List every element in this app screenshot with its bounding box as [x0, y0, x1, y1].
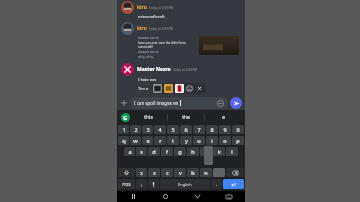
button[interactable]: Gift	[217, 100, 224, 107]
staticText: 3	[146, 126, 150, 133]
button[interactable]: React	[175, 84, 184, 93]
button[interactable]: z	[136, 168, 147, 177]
staticText: n	[204, 169, 208, 176]
button[interactable]: s	[136, 147, 147, 156]
staticText: 2	[134, 126, 138, 133]
button[interactable]: Enter	[223, 179, 244, 189]
staticText: kiro	[137, 4, 147, 11]
button[interactable]: Home	[149, 191, 181, 202]
button[interactable]: c	[161, 168, 173, 177]
button[interactable]: Backspace	[226, 168, 244, 177]
button[interactable]: x	[148, 168, 160, 177]
staticText: a	[128, 148, 132, 155]
button[interactable]: Add attachment	[120, 99, 128, 107]
staticText: I hate ww	[138, 77, 157, 82]
button[interactable]: 0	[232, 125, 244, 134]
button[interactable]: b	[187, 168, 199, 177]
button[interactable]: u	[193, 136, 205, 145]
button[interactable]: y	[180, 136, 192, 145]
button[interactable]: f	[161, 147, 173, 156]
staticText: English	[178, 182, 192, 187]
button[interactable]: English	[160, 179, 210, 189]
button[interactable]: ?123	[118, 179, 135, 189]
button[interactable]: Add reaction	[186, 85, 193, 92]
staticText: q	[122, 137, 126, 144]
staticText: 8	[210, 126, 214, 133]
button[interactable]: q	[118, 136, 129, 145]
staticText: 6	[184, 126, 188, 133]
button[interactable]: Close	[196, 85, 203, 92]
button[interactable]: 5	[167, 125, 179, 134]
button[interactable]: 3	[142, 125, 153, 134]
button[interactable]: Switch keyboard	[213, 191, 245, 202]
button[interactable]: v	[174, 168, 186, 177]
button[interactable]: Period	[211, 179, 222, 189]
button[interactable]: 7	[193, 125, 205, 134]
button[interactable]: l	[226, 147, 238, 156]
button[interactable]: 6	[180, 125, 192, 134]
button[interactable]: this	[130, 110, 167, 124]
staticText: x	[153, 169, 156, 176]
button[interactable]: Quick reactions	[153, 84, 204, 93]
button[interactable]: Comma	[136, 179, 147, 189]
button[interactable]: t	[167, 136, 179, 145]
button[interactable]: a	[205, 110, 241, 124]
button[interactable]: g	[174, 147, 186, 156]
staticText: p	[236, 137, 240, 144]
staticText: Today at 3:09 PM	[149, 6, 173, 10]
staticText: g	[178, 148, 182, 155]
button[interactable]: 2	[130, 125, 141, 134]
staticText: y	[185, 137, 188, 144]
staticText: s	[140, 148, 143, 155]
button[interactable]: w	[130, 136, 141, 145]
button[interactable]: 1	[118, 125, 129, 134]
staticText: d	[152, 148, 156, 155]
button[interactable]: the	[168, 110, 204, 124]
button[interactable]: Shift	[118, 168, 135, 177]
staticText: xxxxxxx xxx xx	[138, 36, 159, 40]
button[interactable]: 9	[219, 125, 231, 134]
button[interactable]: Google	[121, 113, 130, 122]
button[interactable]: Voice input	[148, 179, 159, 189]
button[interactable]: 8	[206, 125, 218, 134]
button[interactable]: 4	[154, 125, 166, 134]
button[interactable]: Pause recording	[117, 191, 149, 202]
button[interactable]: React	[153, 84, 162, 93]
button[interactable]: I can spoil images en	[130, 97, 228, 109]
button[interactable]: d	[148, 147, 160, 156]
staticText: ,	[141, 181, 143, 188]
staticText: l	[231, 148, 233, 155]
staticText: 1	[122, 126, 126, 133]
staticText: f	[166, 148, 168, 155]
staticText: kiro	[137, 25, 147, 32]
button[interactable]: Send	[230, 97, 242, 109]
staticText: ok ty, ok ty.	[138, 55, 154, 59]
staticText: 4	[158, 126, 162, 133]
staticText: v	[179, 169, 182, 176]
staticText: b	[191, 169, 195, 176]
staticText: Today at 3:09 PM	[149, 27, 173, 31]
button[interactable]: o	[219, 136, 231, 145]
button[interactable]: e	[142, 136, 153, 145]
button[interactable]: p	[232, 136, 244, 145]
button[interactable]: h	[187, 147, 199, 156]
staticText: minecraftcraft	[138, 14, 165, 19]
staticText: w	[133, 137, 138, 144]
button[interactable]: k	[213, 147, 225, 156]
staticText: G	[123, 114, 128, 122]
staticText: ?123	[122, 182, 131, 187]
button[interactable]: r	[154, 136, 166, 145]
staticText: have you ever seen the ditto from minecr…	[138, 41, 197, 49]
staticText: t	[172, 137, 174, 144]
button[interactable]: i	[206, 136, 218, 145]
button[interactable]: a	[124, 147, 135, 156]
button[interactable]: m	[213, 168, 225, 177]
button[interactable]: j	[200, 147, 212, 156]
button[interactable]: n	[200, 168, 212, 177]
staticText: Today at 4:08 PM	[173, 68, 197, 72]
staticText: the	[182, 114, 190, 121]
staticText: h	[191, 148, 195, 155]
button[interactable]: React	[164, 84, 173, 93]
button[interactable]: Back	[181, 191, 213, 202]
